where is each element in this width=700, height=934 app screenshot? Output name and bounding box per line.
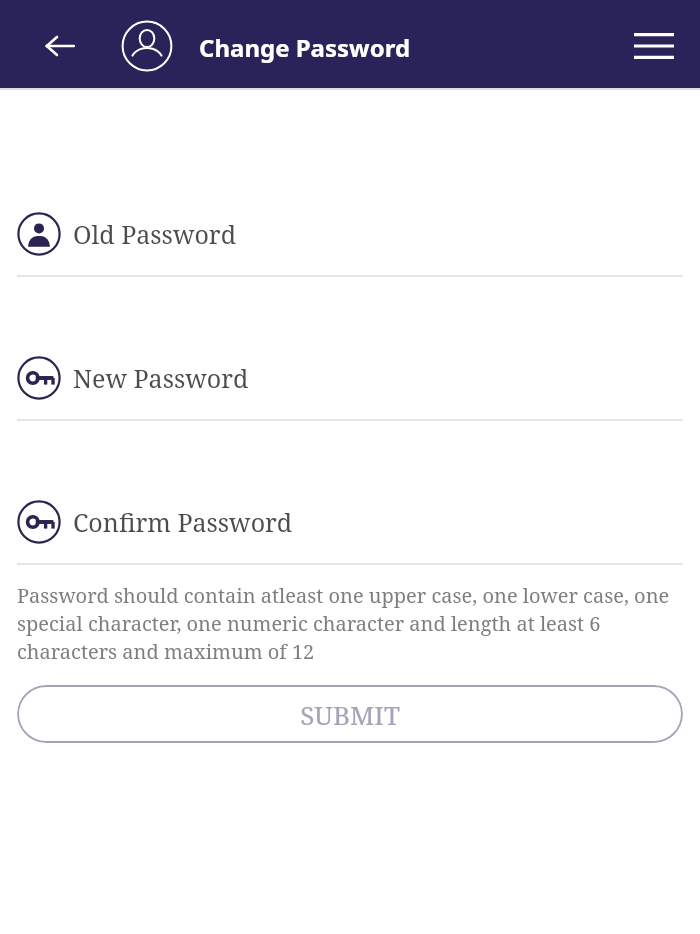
button[interactable]: SUBMIT — [17, 685, 683, 743]
button[interactable]: New Password — [0, 352, 700, 404]
staticText: Password should contain atleast one uppe… — [17, 582, 683, 665]
button[interactable]: Profile — [119, 18, 175, 74]
staticText: New Password — [73, 361, 249, 395]
button[interactable]: Menu — [628, 20, 680, 72]
staticText: SUBMIT — [300, 697, 400, 732]
button[interactable]: Back — [36, 22, 84, 70]
staticText: Confirm Password — [73, 505, 293, 539]
button[interactable]: Old Password — [0, 208, 700, 260]
staticText: Change Password — [199, 31, 411, 64]
button[interactable]: Confirm Password — [0, 496, 700, 548]
staticText: Old Password — [73, 217, 236, 251]
